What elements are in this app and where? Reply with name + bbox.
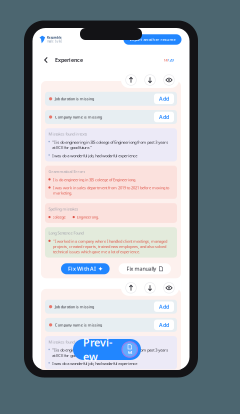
staticText: Mistakes found in texts xyxy=(48,339,87,345)
staticText: made by AI xyxy=(47,40,62,43)
staticText: Company name is missing xyxy=(55,322,102,327)
staticText: Add xyxy=(159,321,169,328)
staticText: I was do a wonderful job, had wodarful e… xyxy=(52,153,137,158)
staticText: 14 xyxy=(163,57,167,63)
staticText: "I worked in a company where I handled c… xyxy=(53,238,167,254)
staticText: Add xyxy=(159,95,169,102)
staticText: Long Sentence Found xyxy=(48,230,83,236)
button[interactable]: Preview section xyxy=(163,282,175,294)
button[interactable]: Fix With AI xyxy=(61,263,110,274)
staticText: Fix manually xyxy=(127,265,157,272)
button[interactable]: Job duration is missing xyxy=(45,300,177,314)
staticText: Experience xyxy=(55,56,83,64)
staticText: Engineerong. xyxy=(77,214,99,220)
staticText: "I is do engineering in 3IS coleege of E… xyxy=(52,139,168,150)
staticText: Preview xyxy=(83,335,112,364)
button[interactable]: Move section down xyxy=(144,282,156,294)
staticText: I was do a wonderful job, had wodarful e… xyxy=(52,361,137,366)
staticText: Job duration is missing xyxy=(55,96,94,101)
staticText: Mistakes found in texts xyxy=(48,131,87,137)
staticText: Import another resume xyxy=(129,37,175,42)
button[interactable]: Job duration is missing xyxy=(45,92,177,106)
button[interactable]: Back xyxy=(41,54,50,66)
staticText: I was work in sales department from 2019… xyxy=(53,185,169,196)
staticText: Resumble xyxy=(47,36,62,39)
button[interactable]: Move section down xyxy=(144,74,156,86)
staticText: Spelling mistakes xyxy=(48,206,78,212)
button[interactable]: Company name is missing xyxy=(45,110,177,124)
button[interactable]: Preview section xyxy=(163,74,175,86)
staticText: Grammatical Errors xyxy=(48,169,85,174)
staticText: Fix With AI xyxy=(68,265,96,272)
staticText: coleege xyxy=(53,214,66,220)
button[interactable]: Move section up xyxy=(125,282,137,294)
button[interactable]: Move section up xyxy=(125,74,137,86)
button[interactable]: Company name is missing xyxy=(45,318,177,332)
staticText: /20 xyxy=(167,57,173,63)
staticText: Company name is missing xyxy=(55,114,102,120)
staticText: Add xyxy=(159,113,169,121)
staticText: I is do engineering in 3IS coleege of En… xyxy=(53,177,136,182)
staticText: "I is do engineering in 3IS coleege of E… xyxy=(52,347,168,358)
staticText: Job duration is missing xyxy=(55,304,94,309)
button[interactable]: Resumble home xyxy=(39,36,62,43)
button[interactable]: Fix manually xyxy=(119,263,171,274)
staticText: Add xyxy=(159,303,169,310)
staticText: 64 xyxy=(128,349,132,355)
button[interactable]: Import another resume xyxy=(123,34,181,45)
button[interactable]: Preview xyxy=(73,339,141,360)
